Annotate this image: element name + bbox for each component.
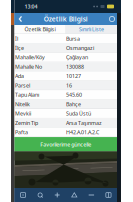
staticText: Parsel: [15, 82, 30, 89]
staticText: Sınırlı Liste: [79, 26, 104, 33]
staticText: Bursa: [66, 35, 80, 42]
staticText: Osmangazi: [66, 44, 94, 51]
staticText: H42.A.01.A.2.C: [66, 129, 99, 136]
button[interactable]: Back: [14, 13, 26, 25]
staticText: İlçe: [15, 44, 24, 51]
staticText: 16: [66, 82, 72, 89]
staticText: Nitelik: [15, 101, 30, 108]
staticText: Arsa Taşınmaz: [66, 119, 102, 126]
button[interactable]: Search: [32, 188, 49, 202]
staticText: Özetlik Bilgisi: [24, 26, 55, 33]
staticText: Mahalle/Köy: [15, 54, 45, 61]
button[interactable]: Info: [107, 13, 117, 25]
staticText: Özetlik Bilgisi: [44, 15, 88, 23]
staticText: Suda Üstü: [66, 110, 91, 117]
staticText: 13:04: [24, 3, 37, 10]
staticText: Mevkii: [15, 110, 31, 117]
staticText: Zemin Tip: [15, 119, 38, 126]
button[interactable]: Map: [100, 188, 117, 202]
staticText: İl: [15, 35, 18, 42]
button[interactable]: Photos: [14, 188, 32, 202]
staticText: Pafta: [15, 129, 28, 136]
staticText: Çağlayan: [66, 54, 88, 61]
button[interactable]: More: [83, 188, 100, 202]
button[interactable]: Add: [49, 188, 66, 202]
button[interactable]: Favorilerime güncelle: [14, 137, 117, 152]
staticText: Tapu Alanı: [15, 91, 39, 98]
staticText: 130088: [66, 63, 84, 70]
staticText: Favorilerime güncelle: [40, 141, 91, 148]
button[interactable]: Sınırlı Liste: [66, 25, 117, 34]
staticText: Mahalle No: [15, 63, 42, 70]
button[interactable]: Özetlik Bilgisi: [14, 25, 65, 34]
staticText: Ada: [15, 72, 24, 80]
staticText: Bahçe: [66, 101, 81, 108]
staticText: 10127: [66, 72, 81, 80]
button[interactable]: Navigate: [66, 188, 83, 202]
staticText: 545.60: [66, 91, 82, 98]
